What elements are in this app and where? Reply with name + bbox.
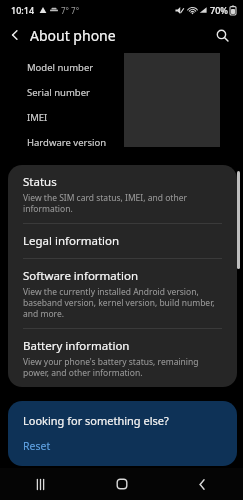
staticText: Status — [23, 174, 57, 190]
staticText: 7° 7° — [61, 5, 80, 16]
button[interactable]: Software information — [8, 259, 237, 328]
staticText: Software information — [23, 268, 138, 284]
staticText: View the currently installed Android ver… — [23, 286, 224, 319]
staticText: 10:14 — [11, 4, 35, 16]
staticText: Legal information — [23, 233, 120, 249]
staticText: 70% — [210, 4, 228, 16]
button[interactable]: Back — [0, 20, 30, 50]
staticText: View the SIM card status, IMEI, and othe… — [23, 192, 224, 214]
staticText: IMEI — [27, 111, 48, 124]
button[interactable]: Back — [162, 468, 243, 500]
button[interactable]: Reset — [23, 439, 51, 453]
button[interactable]: Home — [81, 468, 162, 500]
button[interactable]: Recents — [0, 468, 81, 500]
staticText: Serial number — [27, 86, 90, 99]
staticText: Model number — [27, 61, 94, 74]
staticText: Hardware version — [27, 136, 107, 149]
button[interactable]: Status — [8, 165, 237, 223]
staticText: Battery information — [23, 338, 130, 354]
staticText: Looking for something else? — [23, 413, 169, 428]
button[interactable]: Battery information — [8, 329, 237, 387]
staticText: Reset — [23, 439, 51, 453]
staticText: About phone — [30, 26, 116, 45]
button[interactable]: Search — [208, 21, 236, 49]
staticText: View your phone's battery status, remain… — [23, 356, 224, 378]
button[interactable]: Legal information — [8, 224, 237, 258]
